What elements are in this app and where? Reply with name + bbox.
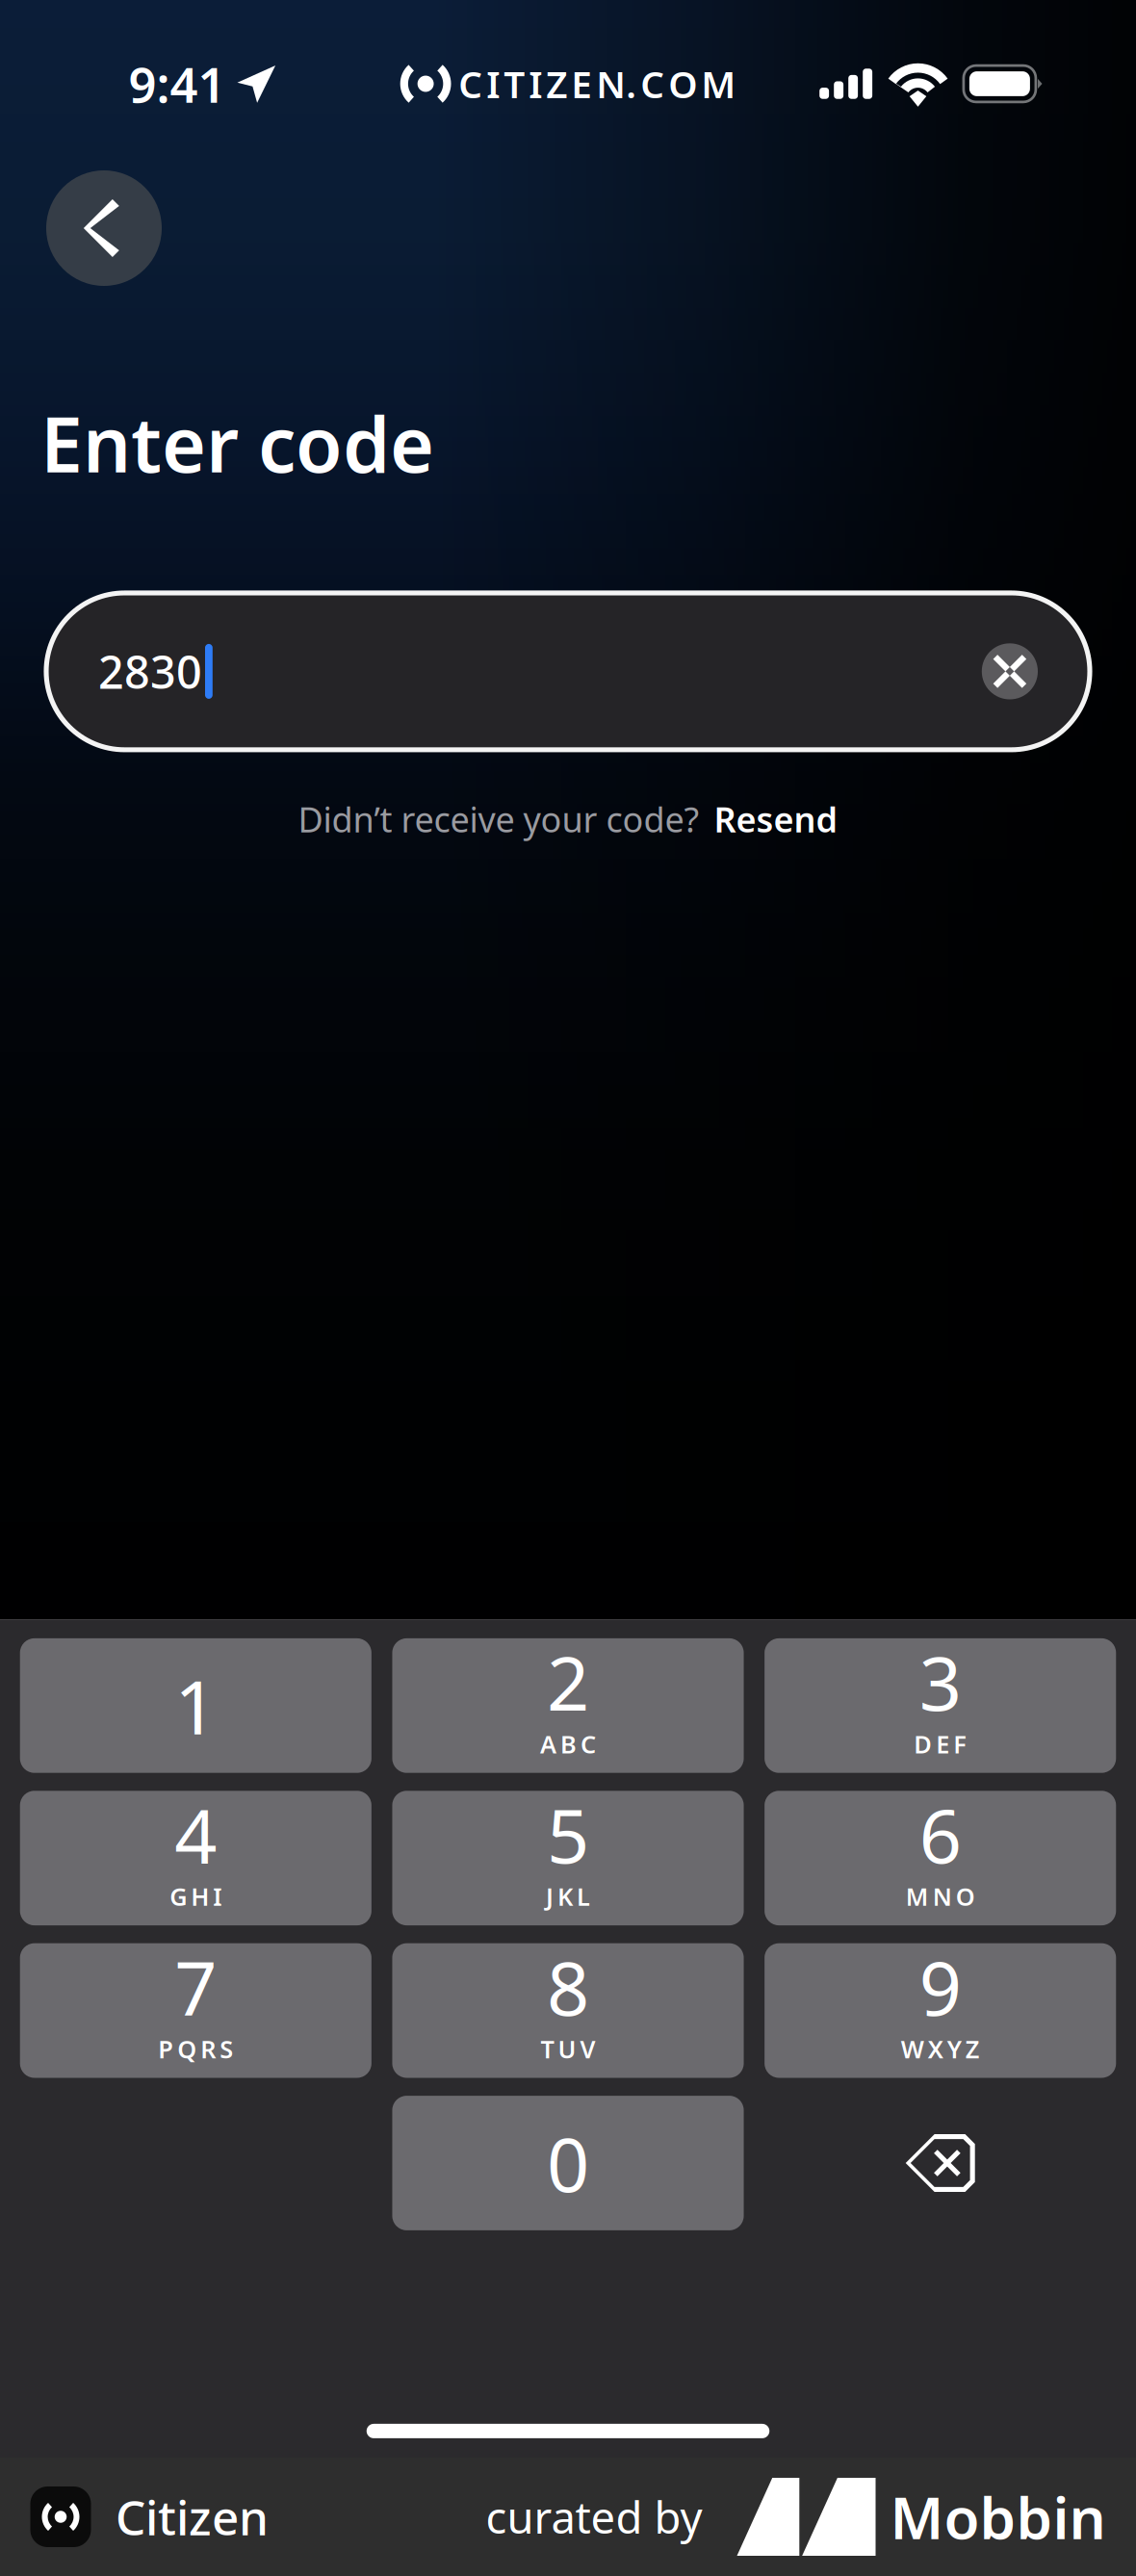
staticText: Mobbin	[890, 2478, 1106, 2555]
button[interactable]: 7	[20, 1943, 371, 2078]
staticText: 7	[175, 1937, 217, 2036]
button[interactable]: 3	[764, 1638, 1116, 1773]
staticText: 9	[919, 1937, 961, 2036]
staticText: 2	[547, 1632, 589, 1731]
button[interactable]: 5	[392, 1791, 744, 1925]
staticText: curated by	[486, 2488, 702, 2546]
button[interactable]: 4	[20, 1791, 371, 1925]
staticText: 4	[175, 1785, 217, 1884]
staticText: Citizen	[116, 2485, 269, 2548]
staticText: G H I	[170, 1880, 222, 1912]
staticText: 8	[547, 1937, 589, 2036]
button[interactable]: Clear text	[982, 643, 1038, 699]
staticText: 5	[547, 1785, 589, 1884]
staticText: Didn’t receive your code?	[298, 796, 699, 842]
button[interactable]: 0	[392, 2096, 744, 2230]
button[interactable]: 9	[764, 1943, 1116, 2078]
staticText: Resend	[714, 796, 838, 842]
staticText: 6	[919, 1785, 961, 1884]
staticText: 0	[547, 2114, 589, 2213]
button[interactable]: 8	[392, 1943, 744, 2078]
staticText: 2830	[98, 641, 202, 701]
staticText: M N O	[906, 1880, 975, 1912]
staticText: W X Y Z	[901, 2033, 980, 2065]
staticText: 9:41	[129, 51, 226, 116]
staticText: Enter code	[40, 393, 434, 493]
staticText: J K L	[546, 1880, 590, 1912]
button[interactable]: Delete	[764, 2096, 1116, 2230]
button[interactable]: 2	[392, 1638, 744, 1773]
staticText: C I T I Z E N. C O M	[459, 59, 736, 108]
staticText: T U V	[541, 2033, 595, 2065]
staticText: 3	[919, 1632, 961, 1731]
staticText: A B C	[540, 1728, 596, 1760]
button[interactable]: Back	[46, 170, 162, 286]
staticText: 1	[175, 1656, 217, 1755]
staticText: P Q R S	[158, 2033, 233, 2065]
button[interactable]: 6	[764, 1791, 1116, 1925]
staticText: D E F	[914, 1728, 967, 1760]
button[interactable]: 1	[20, 1638, 371, 1773]
button[interactable]: Resend	[699, 796, 838, 842]
